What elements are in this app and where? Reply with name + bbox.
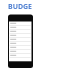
staticText: BUDGET [6, 2, 34, 12]
button[interactable] [8, 14, 33, 69]
button[interactable]: BUDGET [6, 2, 34, 12]
